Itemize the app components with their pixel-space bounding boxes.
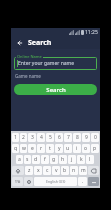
staticText: a (18, 156, 21, 163)
button[interactable]: . (78, 177, 87, 186)
staticText: d (34, 156, 38, 163)
staticText: Online Name (17, 54, 42, 59)
staticText: j (71, 156, 73, 163)
staticText: 3 (31, 134, 34, 141)
staticText: t (49, 145, 51, 152)
button[interactable]: Shift (12, 166, 24, 175)
staticText: b (63, 167, 67, 174)
button[interactable]: q (12, 144, 19, 153)
staticText: 1 (14, 134, 17, 141)
staticText: p (93, 145, 97, 152)
staticText: 8 (76, 134, 79, 141)
button[interactable]: b (61, 166, 69, 175)
staticText: Search (46, 86, 66, 94)
button[interactable]: 1 (12, 133, 19, 142)
staticText: i (76, 145, 78, 152)
button[interactable]: s (24, 155, 31, 164)
button[interactable]: h (59, 155, 67, 164)
button[interactable]: y (55, 144, 63, 153)
staticText: 9 (85, 134, 88, 141)
button[interactable]: 3 (28, 133, 36, 142)
button[interactable]: u (64, 144, 72, 153)
button[interactable]: p (91, 144, 99, 153)
button[interactable]: Settings (24, 177, 33, 186)
button[interactable]: Space (34, 177, 77, 186)
staticText: English (US) (46, 179, 66, 184)
staticText: 7 (67, 134, 70, 141)
button[interactable]: 0 (91, 133, 99, 142)
button[interactable]: 7 (64, 133, 72, 142)
button[interactable]: Search (14, 84, 97, 95)
staticText: 0 (94, 134, 97, 141)
button[interactable]: x (34, 166, 42, 175)
button[interactable]: Backspace (88, 166, 99, 175)
staticText: z (28, 167, 31, 174)
button[interactable]: a (16, 155, 23, 164)
button[interactable]: Enter (88, 177, 99, 186)
staticText: Game name (15, 73, 41, 79)
button[interactable]: f (41, 155, 49, 164)
staticText: . (82, 178, 84, 185)
button[interactable]: l (86, 155, 94, 164)
button[interactable]: 4 (37, 133, 45, 142)
button[interactable]: Symbols (12, 177, 23, 186)
staticText: y (58, 145, 61, 152)
button[interactable]: w (20, 144, 27, 153)
staticText: u (66, 145, 70, 152)
staticText: n (72, 167, 76, 174)
button[interactable]: 9 (82, 133, 90, 142)
button[interactable]: n (70, 166, 78, 175)
button[interactable]: i (73, 144, 81, 153)
button[interactable]: m (79, 166, 87, 175)
staticText: s (26, 156, 29, 163)
staticText: !?# (15, 179, 21, 184)
staticText: v (55, 167, 58, 174)
staticText: 11:25 (85, 29, 98, 36)
staticText: w (22, 145, 26, 152)
button[interactable]: t (46, 144, 54, 153)
button[interactable]: j (68, 155, 76, 164)
staticText: f (44, 156, 46, 163)
button[interactable]: 6 (55, 133, 63, 142)
staticText: l (89, 156, 91, 163)
staticText: 6 (58, 134, 61, 141)
button[interactable]: 5 (46, 133, 54, 142)
staticText: x (37, 167, 40, 174)
button[interactable]: g (50, 155, 58, 164)
button[interactable]: v (52, 166, 60, 175)
staticText: m (81, 167, 86, 174)
staticText: h (61, 156, 65, 163)
button[interactable]: Back (13, 37, 24, 48)
staticText: 4 (40, 134, 43, 141)
button[interactable]: k (77, 155, 85, 164)
staticText: 5 (49, 134, 52, 141)
staticText: o (84, 145, 88, 152)
staticText: q (14, 145, 18, 152)
button[interactable]: e (28, 144, 36, 153)
button[interactable]: 2 (20, 133, 27, 142)
button[interactable]: 8 (73, 133, 81, 142)
staticText: k (80, 156, 83, 163)
button[interactable]: c (43, 166, 51, 175)
staticText: 2 (22, 134, 25, 141)
staticText: Search (28, 38, 52, 48)
staticText: r (40, 145, 43, 152)
staticText: Enter your gamer name (18, 60, 75, 67)
button[interactable]: o (82, 144, 90, 153)
button[interactable]: d (32, 155, 40, 164)
button[interactable]: z (25, 166, 33, 175)
button[interactable]: Enter your gamer name (14, 57, 97, 70)
staticText: g (52, 156, 56, 163)
staticText: e (31, 145, 34, 152)
button[interactable]: r (37, 144, 45, 153)
staticText: c (46, 167, 49, 174)
